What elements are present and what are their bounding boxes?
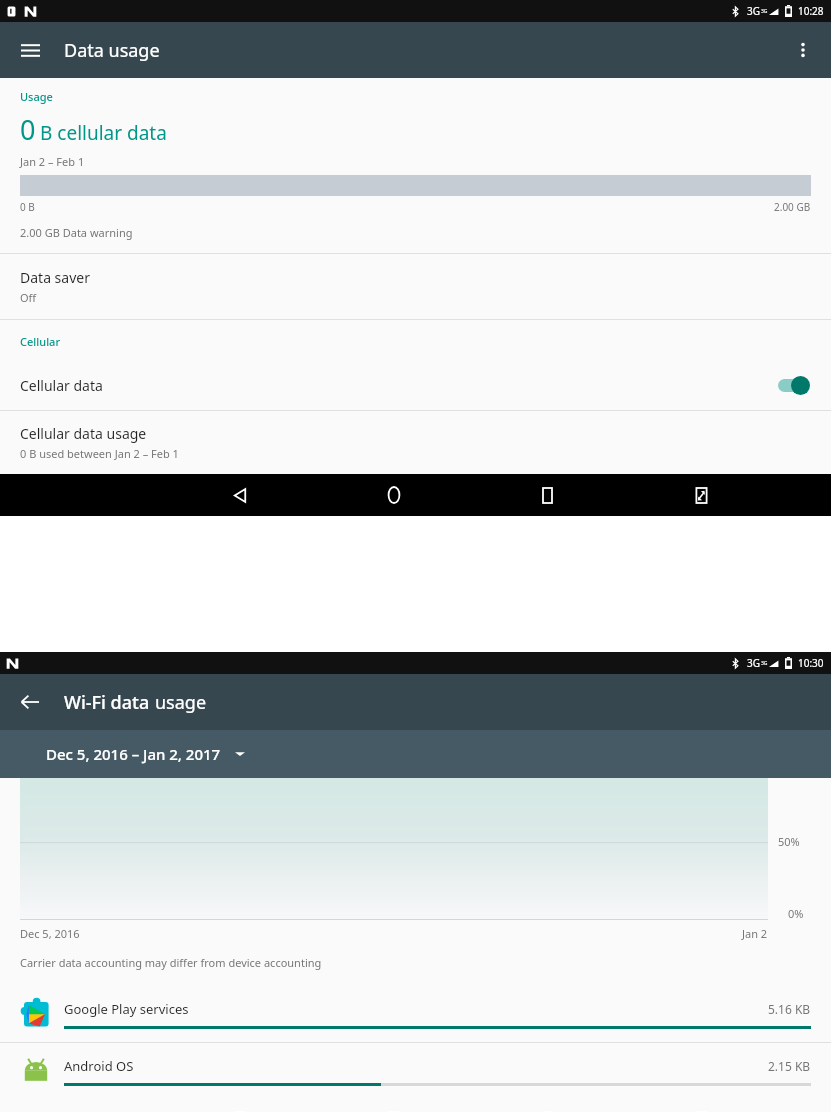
staticText: 3G (747, 4, 760, 18)
button[interactable]: Cellular data (0, 365, 831, 405)
button[interactable]: Cellular data usage (0, 411, 831, 474)
staticText: 0 B used between Jan 2 – Feb 1 (20, 446, 179, 461)
staticText: B cellular data (40, 120, 167, 146)
staticText: Cellular (20, 334, 61, 349)
staticText: 2.00 GB (774, 200, 811, 214)
staticText: 5.16 KB (768, 1001, 811, 1017)
staticText: 3G (761, 8, 768, 15)
staticText: Off (20, 290, 37, 305)
staticText: Data usage (64, 38, 160, 63)
staticText: Dec 5, 2016 – Jan 2, 2017 (46, 744, 221, 764)
button[interactable]: Back (220, 475, 260, 515)
staticText: 50% (778, 834, 800, 849)
button[interactable]: Navigate up (10, 682, 50, 722)
staticText: Android OS (64, 1057, 134, 1075)
button[interactable]: Data saver (0, 254, 831, 319)
button[interactable]: Open navigation menu (10, 30, 50, 70)
staticText: 2.00 GB Data warning (20, 225, 133, 240)
button[interactable]: Android OS (0, 1043, 831, 1099)
staticText: 2.15 KB (768, 1058, 811, 1074)
staticText: 0% (788, 906, 804, 920)
staticText: 3G (761, 660, 768, 667)
button[interactable]: Recent apps (527, 475, 567, 515)
staticText: 10:30 (798, 656, 824, 670)
staticText: usage (155, 690, 207, 715)
button[interactable]: Screenshot (681, 475, 721, 515)
staticText: Jan 2 (742, 926, 768, 941)
staticText: Dec 5, 2016 (20, 926, 80, 941)
button[interactable]: Google Play services (0, 986, 831, 1042)
staticText: Data saver (20, 268, 90, 287)
staticText: Carrier data accounting may differ from … (20, 955, 322, 970)
staticText: 0 B (20, 200, 35, 214)
staticText: Cellular data (20, 376, 103, 395)
staticText: Cellular data usage (20, 424, 147, 443)
staticText: Google Play services (64, 1000, 189, 1018)
button[interactable]: Home (374, 475, 414, 515)
staticText: 10:28 (798, 4, 824, 18)
button[interactable]: More options (783, 30, 823, 70)
staticText: Usage (20, 89, 53, 104)
staticText: Jan 2 – Feb 1 (20, 154, 85, 169)
staticText: 3G (747, 656, 760, 670)
staticText: 0 (20, 111, 36, 148)
staticText: Wi-Fi data (64, 690, 150, 715)
button[interactable]: Dec 5, 2016 – Jan 2, 2017 (46, 744, 245, 764)
